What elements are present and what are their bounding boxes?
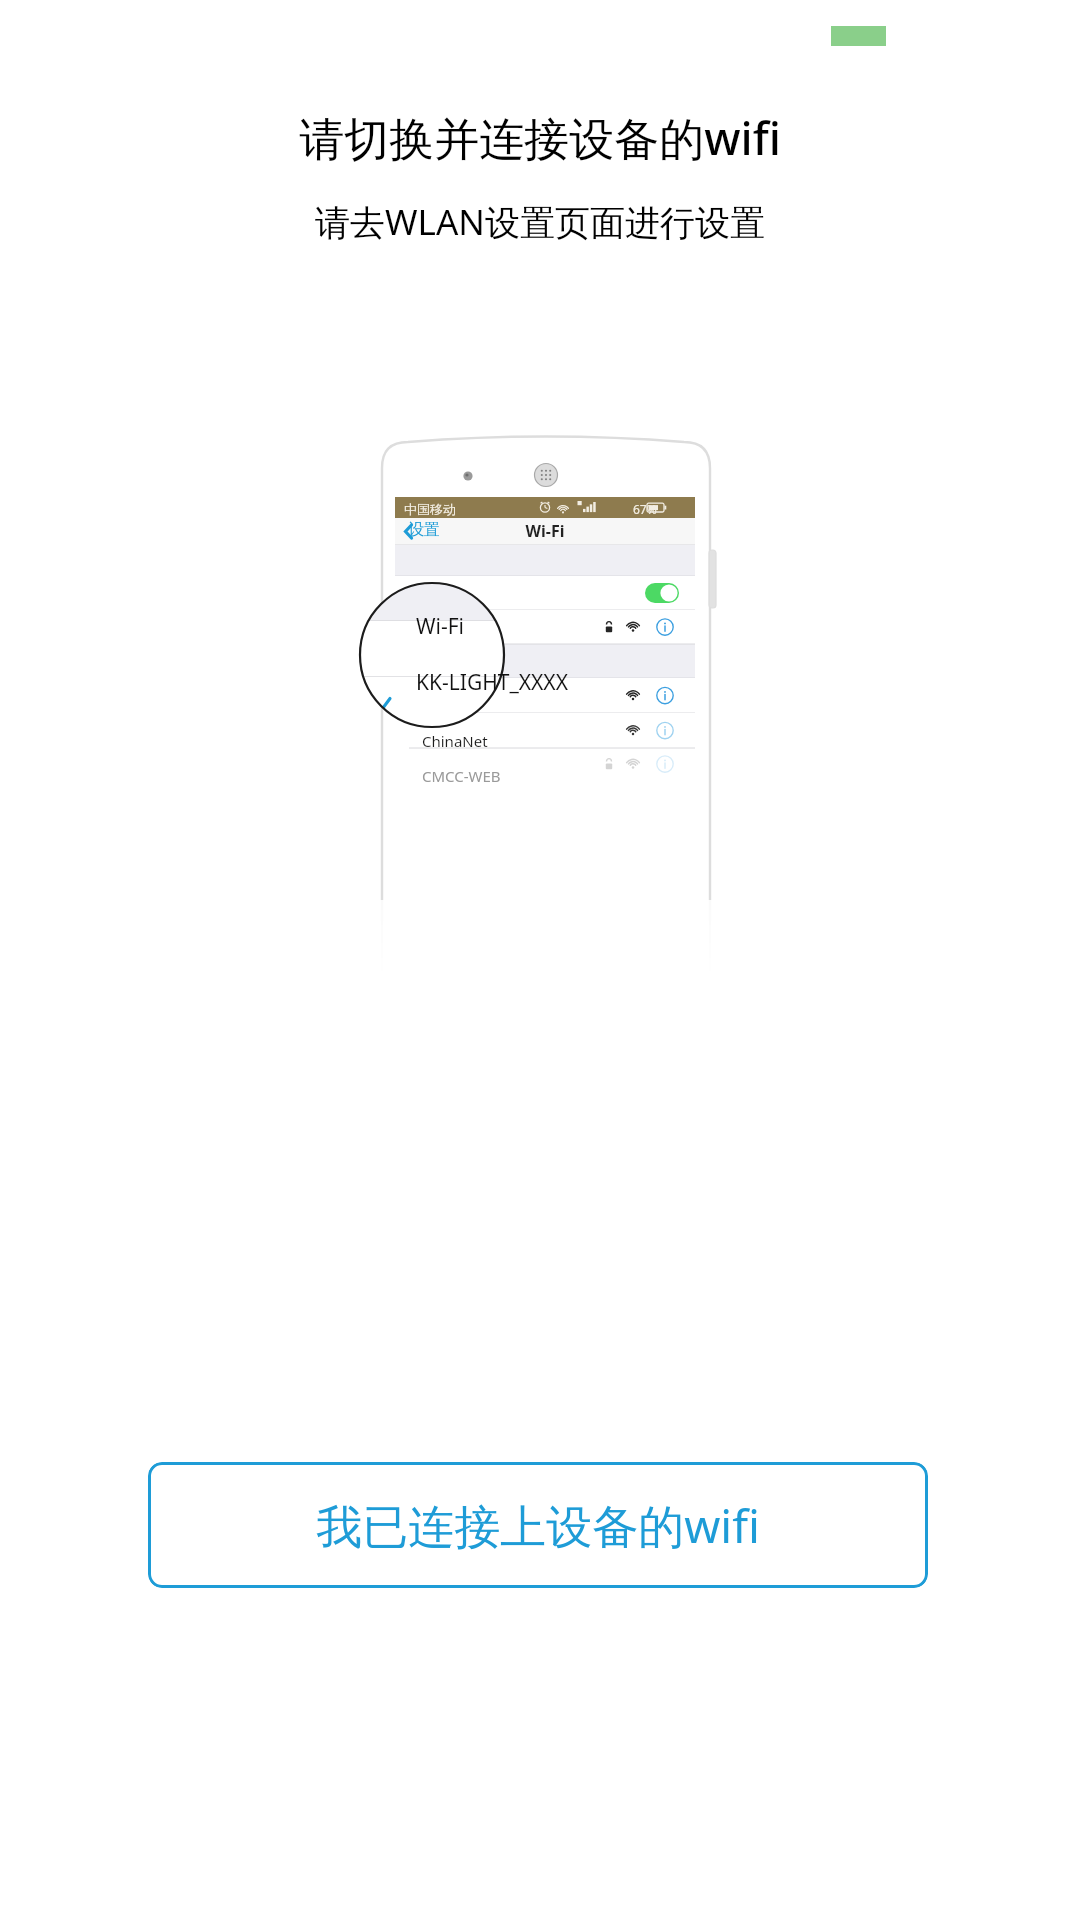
staticText: KK-LIGHT_XXXX xyxy=(416,668,568,697)
staticText: 我已连接上设备的wifi xyxy=(316,1494,760,1557)
button[interactable]: 我已连接上设备的wifi xyxy=(148,1462,928,1588)
staticText: Wi-Fi xyxy=(416,612,465,641)
staticText: 设置 xyxy=(408,520,440,540)
staticText: 请去WLAN设置页面进行设置 xyxy=(0,198,1080,246)
staticText: 中国移动 xyxy=(404,501,456,517)
staticText: ChinaNet xyxy=(422,731,488,751)
staticText: 请切换并连接设备的wifi xyxy=(0,107,1080,168)
staticText: 67% xyxy=(633,501,657,517)
staticText: Wi-Fi xyxy=(395,520,695,542)
staticText: CMCC-WEB xyxy=(422,766,501,786)
